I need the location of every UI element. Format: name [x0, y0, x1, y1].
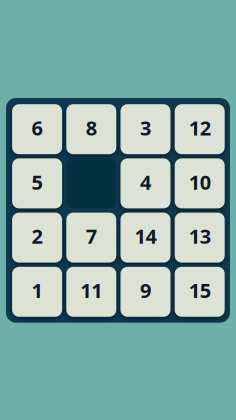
button[interactable]: Tile 12 — [175, 104, 225, 154]
button[interactable]: Tile 7 — [66, 213, 116, 263]
button[interactable]: Tile 8 — [66, 104, 116, 154]
button[interactable]: Tile 9 — [120, 267, 170, 317]
staticText: 9 — [140, 277, 151, 304]
button[interactable]: Tile 2 — [12, 213, 62, 263]
staticText: 12 — [189, 114, 211, 141]
button[interactable]: Tile 15 — [175, 267, 225, 317]
staticText: 4 — [140, 169, 151, 195]
button[interactable]: Tile 10 — [175, 158, 225, 208]
staticText: 5 — [32, 169, 43, 195]
button[interactable]: Tile 11 — [66, 267, 116, 317]
staticText: 13 — [189, 223, 211, 249]
staticText: 3 — [140, 114, 151, 141]
button[interactable]: Tile 3 — [120, 104, 170, 154]
staticText: 11 — [80, 277, 102, 304]
button[interactable]: Tile 6 — [12, 104, 62, 154]
staticText: 14 — [134, 223, 156, 249]
button[interactable]: Tile 5 — [12, 158, 62, 208]
staticText: 10 — [189, 169, 211, 195]
button[interactable]: Tile 14 — [120, 213, 170, 263]
staticText: 8 — [86, 114, 97, 141]
button[interactable]: Tile 13 — [175, 213, 225, 263]
staticText: 15 — [189, 277, 211, 304]
button[interactable]: Tile 4 — [120, 158, 170, 208]
button[interactable]: Tile 1 — [12, 267, 62, 317]
staticText: 6 — [32, 114, 43, 141]
staticText: 2 — [32, 223, 43, 249]
staticText: 1 — [32, 277, 43, 304]
staticText: 7 — [86, 223, 97, 249]
